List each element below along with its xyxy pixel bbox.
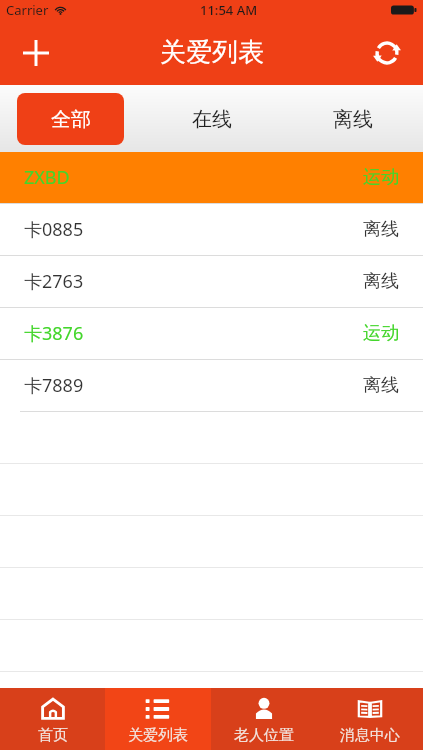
staticText: 老人位置	[234, 726, 294, 745]
staticText: ZXBD	[24, 165, 70, 190]
staticText: 消息中心	[340, 726, 400, 745]
button[interactable]: 消息中心	[317, 688, 423, 750]
button[interactable]: 关爱列表	[105, 688, 211, 750]
staticText: 离线	[363, 374, 399, 397]
staticText: 首页	[38, 726, 68, 745]
button[interactable]: 卡3876	[0, 308, 423, 359]
button[interactable]: ZXBD	[0, 152, 423, 203]
button[interactable]: 老人位置	[211, 688, 317, 750]
staticText: 运动	[363, 322, 399, 345]
button[interactable]: Refresh	[363, 29, 411, 77]
button[interactable]: Add	[12, 29, 60, 77]
staticText: 关爱列表	[160, 36, 264, 69]
button[interactable]: 在线	[158, 93, 265, 145]
button[interactable]: 卡7889	[0, 360, 423, 411]
staticText: 卡7889	[24, 373, 84, 398]
staticText: 卡0885	[24, 217, 84, 242]
button[interactable]: 卡2763	[0, 256, 423, 307]
staticText: 运动	[363, 166, 399, 189]
button[interactable]: 全部	[17, 93, 124, 145]
button[interactable]: 卡0885	[0, 204, 423, 255]
staticText: 离线	[363, 270, 399, 293]
button[interactable]: 离线	[299, 93, 406, 145]
staticText: 11:54 AM	[200, 1, 258, 19]
staticText: 卡2763	[24, 269, 84, 294]
staticText: 离线	[363, 218, 399, 241]
staticText: 离线	[333, 107, 373, 132]
staticText: 在线	[192, 107, 232, 132]
staticText: 全部	[51, 107, 91, 132]
staticText: 卡3876	[24, 321, 84, 346]
staticText: Carrier	[6, 1, 49, 19]
button[interactable]: 首页	[0, 688, 105, 750]
staticText: 关爱列表	[128, 726, 188, 745]
